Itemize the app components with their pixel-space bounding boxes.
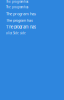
staticText: The program has — [6, 25, 36, 29]
staticText: The program has — [6, 11, 36, 16]
staticText: The program has — [6, 0, 28, 3]
staticText: The program has — [6, 5, 28, 9]
staticText: a list Side side — [6, 31, 26, 35]
staticText: The program has — [6, 18, 33, 23]
